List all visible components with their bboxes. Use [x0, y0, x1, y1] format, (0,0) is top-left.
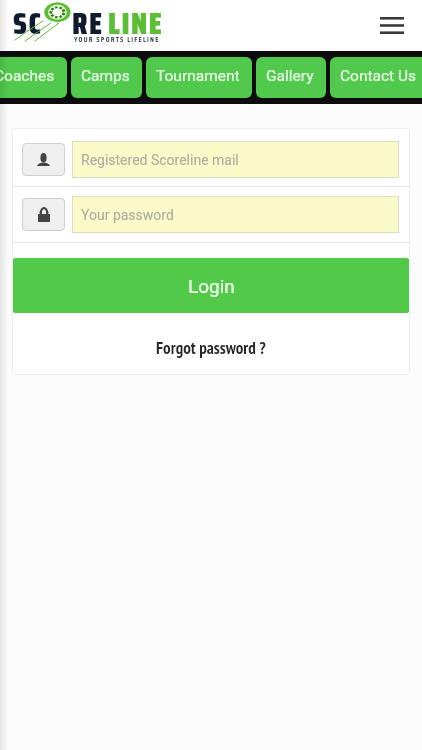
button[interactable]: Registered Scoreline mail [72, 141, 399, 178]
staticText: Tournament [156, 67, 240, 85]
button[interactable]: Camps [71, 57, 142, 98]
button[interactable]: Gallery [256, 57, 326, 98]
button[interactable]: Forgot password ? [12, 313, 410, 375]
staticText: Registered Scoreline mail [81, 152, 239, 168]
staticText: Contact Us [340, 67, 417, 85]
button[interactable]: Login [12, 258, 410, 313]
staticText: Coaches [0, 67, 55, 85]
staticText: YOUR SPORTS LIFELINE [74, 33, 160, 45]
staticText: Camps [81, 67, 130, 85]
staticText: Gallery [266, 67, 314, 85]
staticText: Login [188, 275, 235, 297]
staticText: LINE [108, 0, 164, 45]
staticText: Your password [81, 207, 174, 223]
staticText: SC [13, 0, 43, 45]
button[interactable]: Menu [371, 4, 413, 46]
button[interactable]: Contact Us [330, 57, 422, 98]
button[interactable]: Coaches [0, 57, 67, 98]
button[interactable]: Tournament [146, 57, 252, 98]
button[interactable]: Your password [72, 196, 399, 233]
staticText: RE [72, 0, 104, 45]
staticText: Forgot password ? [156, 337, 266, 359]
